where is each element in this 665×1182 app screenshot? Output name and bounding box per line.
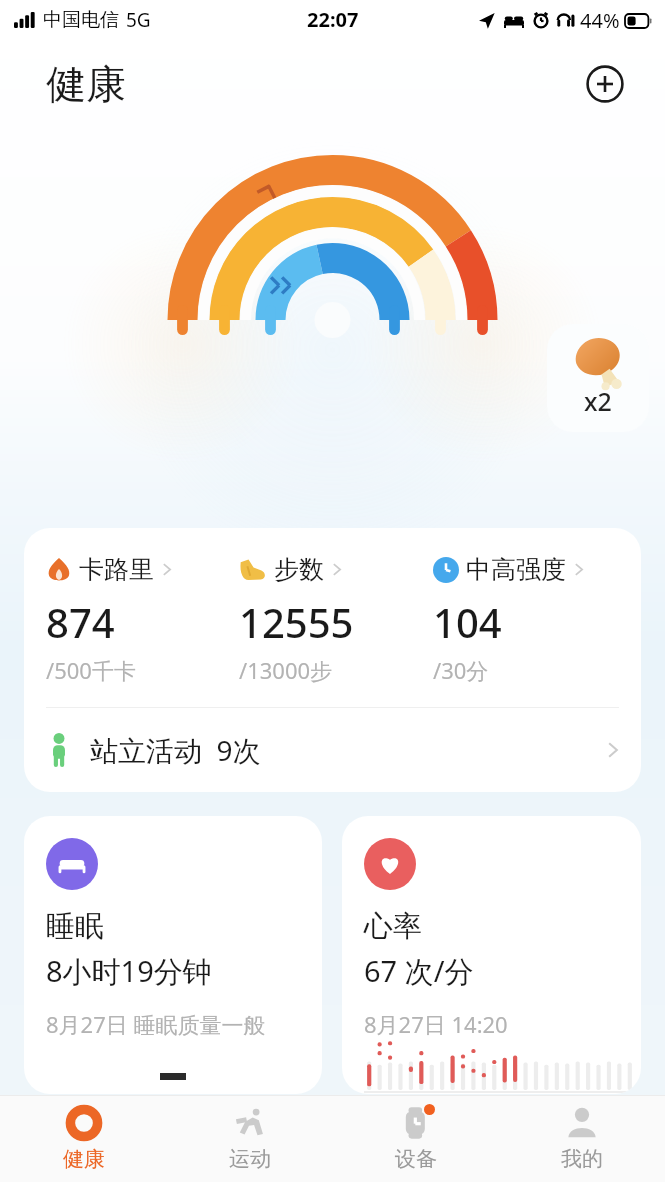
- staticText: 12555: [239, 595, 354, 649]
- staticText: 22:07: [307, 6, 359, 33]
- staticText: 中国电信: [43, 8, 119, 32]
- staticText: 8月27日 14:20: [364, 1009, 508, 1039]
- button[interactable]: 站立活动 9次: [24, 708, 641, 792]
- staticText: 874: [46, 595, 115, 649]
- button[interactable]: 中高强度: [433, 554, 627, 685]
- staticText: 中高强度: [466, 554, 566, 585]
- button[interactable]: 睡眠: [24, 816, 322, 1094]
- button[interactable]: 步数: [239, 554, 433, 685]
- staticText: 睡眠: [46, 908, 104, 945]
- button[interactable]: Add: [583, 62, 627, 106]
- staticText: 步数: [274, 554, 324, 585]
- staticText: /13000步: [239, 655, 333, 685]
- staticText: 我的: [561, 1146, 603, 1172]
- button[interactable]: 设备: [333, 1106, 499, 1172]
- button[interactable]: 健康: [0, 1106, 167, 1172]
- button[interactable]: 我的: [499, 1106, 665, 1172]
- staticText: 67 次/分: [364, 951, 474, 991]
- staticText: 站立活动 9次: [90, 731, 261, 769]
- button[interactable]: 卡路里: [46, 554, 239, 685]
- staticText: /30分: [433, 655, 489, 685]
- staticText: 设备: [395, 1146, 437, 1172]
- staticText: 健康: [63, 1146, 105, 1172]
- staticText: 心率: [364, 908, 422, 945]
- staticText: 44%: [580, 7, 620, 34]
- button[interactable]: 运动: [167, 1106, 333, 1172]
- button[interactable]: Food reward: [547, 324, 649, 432]
- staticText: 8月27日 睡眠质量一般: [46, 1009, 266, 1039]
- staticText: 8小时19分钟: [46, 951, 212, 991]
- button[interactable]: 心率: [342, 816, 641, 1094]
- staticText: 卡路里: [79, 554, 154, 585]
- staticText: x2: [584, 384, 612, 418]
- staticText: 健康: [46, 59, 126, 109]
- staticText: 运动: [229, 1146, 271, 1172]
- staticText: 5G: [126, 7, 151, 33]
- staticText: 104: [433, 595, 502, 649]
- staticText: /500千卡: [46, 655, 136, 685]
